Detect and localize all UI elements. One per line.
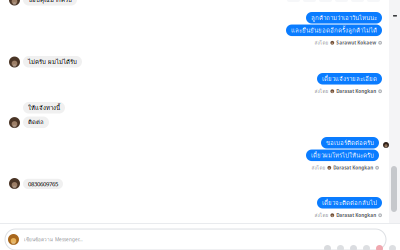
staticText: ส่งโดย bbox=[314, 39, 328, 46]
staticText: ส่งโดย bbox=[314, 211, 328, 219]
staticText: Sarawut Kokaew bbox=[336, 40, 376, 46]
button[interactable]: เดี๋ยวแจ้งรายละเอียด bbox=[317, 73, 382, 84]
staticText: ติดต่อ bbox=[28, 117, 44, 127]
staticText: ขอเบอร์ติดต่อครับ bbox=[326, 138, 374, 147]
button[interactable]: Sticker bbox=[337, 245, 344, 250]
staticText: Darasat Kongkan bbox=[333, 165, 373, 171]
staticText: ส่งโดย bbox=[314, 87, 328, 95]
staticText: เขียนข้อความ Messenger… bbox=[24, 236, 83, 243]
button[interactable]: ลูกค้าถามว่าเอาวันไหนนะ bbox=[306, 12, 382, 23]
button[interactable]: ขอบคุณมากครับ bbox=[23, 0, 77, 5]
button[interactable]: ไม่ครับ ผมไม่ได้รับ bbox=[23, 56, 82, 67]
staticText: ให้แจ้งทางนี้ bbox=[28, 103, 60, 112]
button[interactable]: และยืนยันยอดอีกครั้งลูกค้าไม่ได้ bbox=[286, 24, 382, 36]
button[interactable]: GIF bbox=[350, 245, 357, 250]
button[interactable]: 0830609765 bbox=[23, 179, 63, 189]
staticText: Darasat Kongkan bbox=[336, 88, 376, 94]
staticText: และยืนยันยอดอีกครั้งลูกค้าไม่ได้ bbox=[291, 25, 377, 35]
button[interactable]: เดี๋ยวผมโทรไปให้นะครับ bbox=[306, 149, 379, 161]
staticText: ลูกค้าถามว่าเอาวันไหนนะ bbox=[311, 13, 377, 22]
staticText: ส่งโดย bbox=[311, 164, 325, 171]
button[interactable]: Like bbox=[376, 245, 383, 250]
button[interactable]: เดี๋ยวจะติดต่อกลับไป bbox=[317, 197, 382, 208]
button[interactable]: Emoji bbox=[363, 245, 370, 250]
staticText: Darasat Kongkan bbox=[336, 212, 376, 218]
staticText: เดี๋ยวแจ้งรายละเอียด bbox=[322, 74, 377, 83]
button[interactable]: Send bbox=[389, 245, 396, 250]
button[interactable]: React to message bbox=[283, 0, 384, 6]
staticText: ไม่ครับ ผมไม่ได้รับ bbox=[28, 57, 77, 66]
button[interactable]: ขอเบอร์ติดต่อครับ bbox=[321, 137, 379, 148]
staticText: เดี๋ยวจะติดต่อกลับไป bbox=[322, 198, 377, 207]
button[interactable]: เขียนข้อความ Messenger… bbox=[5, 229, 386, 250]
staticText: ขอบคุณมากครับ bbox=[28, 0, 72, 4]
button[interactable]: ติดต่อ bbox=[23, 116, 49, 128]
button[interactable]: Add photo bbox=[324, 245, 331, 250]
staticText: 0830609765 bbox=[28, 180, 58, 188]
button[interactable]: ให้แจ้งทางนี้ bbox=[23, 102, 65, 113]
staticText: เดี๋ยวผมโทรไปให้นะครับ bbox=[311, 150, 374, 160]
